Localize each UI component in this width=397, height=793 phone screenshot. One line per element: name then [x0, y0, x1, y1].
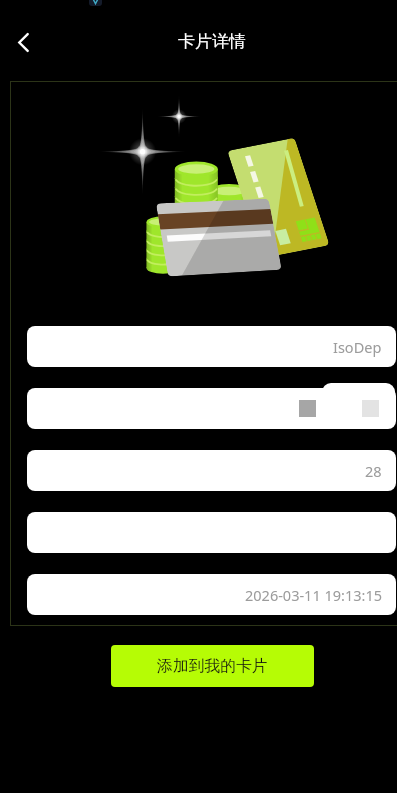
button[interactable]: Back	[7, 26, 40, 59]
button[interactable]: 28	[27, 450, 396, 491]
staticText: 卡片详情	[178, 31, 246, 52]
staticText: 28	[365, 461, 382, 481]
button[interactable]: 2026-03-11 19:13:15	[27, 574, 396, 615]
button[interactable]	[27, 388, 396, 429]
button[interactable]	[27, 512, 396, 553]
staticText: 添加到我的卡片	[157, 656, 268, 676]
button[interactable]: 添加到我的卡片	[111, 645, 314, 687]
staticText: IsoDep	[333, 337, 382, 357]
button[interactable]: IsoDep	[27, 326, 396, 367]
staticText: 2026-03-11 19:13:15	[245, 585, 382, 605]
